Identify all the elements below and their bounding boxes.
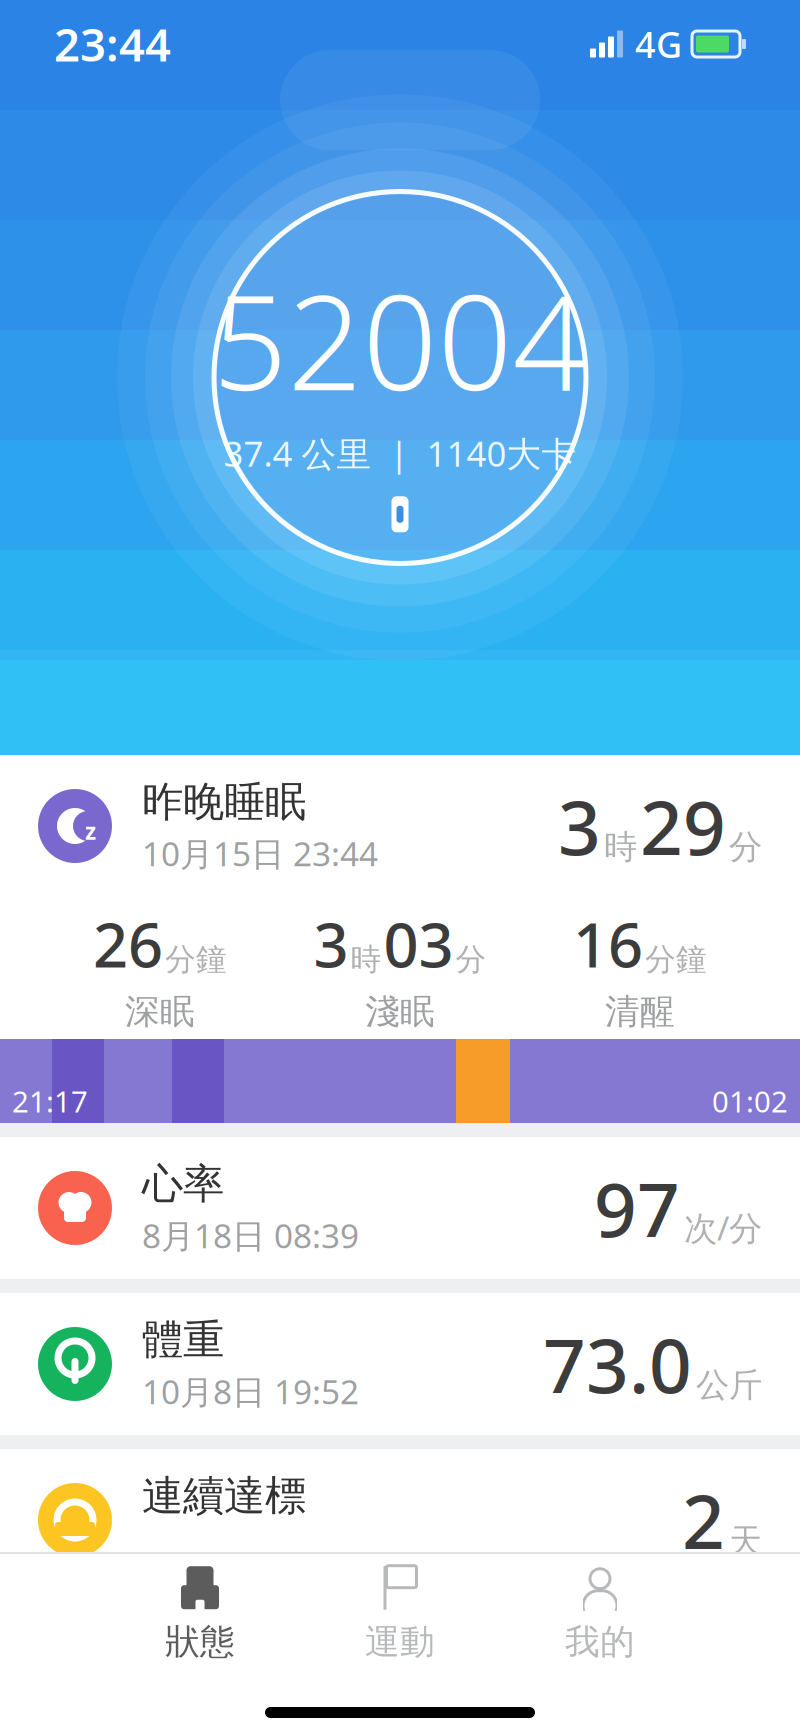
staticText: 23:44 bbox=[54, 14, 171, 74]
staticText: 21:17 bbox=[12, 1081, 88, 1120]
staticText: 10月15日 23:44 bbox=[142, 831, 378, 876]
staticText: 連續達標 bbox=[142, 1470, 306, 1521]
staticText: 26 bbox=[93, 903, 163, 984]
staticText: 公斤 bbox=[696, 1365, 762, 1405]
staticText: 次/分 bbox=[684, 1205, 762, 1250]
staticText: 分鐘 bbox=[645, 941, 707, 978]
staticText: 昨晚睡眠 bbox=[142, 776, 306, 827]
staticText: 淺眠 bbox=[365, 990, 435, 1033]
staticText: z bbox=[85, 816, 96, 846]
staticText: 10月8日 19:52 bbox=[142, 1369, 359, 1414]
staticText: 52004 bbox=[212, 253, 587, 426]
staticText: 分鐘 bbox=[165, 941, 227, 978]
staticText: 3 bbox=[313, 903, 348, 984]
staticText: 深眠 bbox=[125, 990, 195, 1033]
staticText: 清醒 bbox=[605, 990, 675, 1033]
staticText: 73.0 bbox=[543, 1314, 692, 1414]
button[interactable]: z bbox=[0, 755, 800, 897]
staticText: 4G bbox=[635, 20, 682, 68]
staticText: 29 bbox=[640, 776, 726, 876]
button[interactable]: 心率 bbox=[0, 1137, 800, 1279]
staticText: 心率 bbox=[142, 1158, 224, 1209]
button[interactable]: 運動 bbox=[300, 1554, 500, 1674]
button[interactable]: 體重 bbox=[0, 1293, 800, 1435]
staticText: 8月18日 08:39 bbox=[142, 1213, 359, 1258]
staticText: 03 bbox=[383, 903, 453, 984]
button[interactable]: 狀態 bbox=[100, 1554, 300, 1674]
button[interactable]: 連續達標 bbox=[0, 1449, 800, 1591]
staticText: 時 bbox=[604, 827, 637, 867]
staticText: 3 bbox=[558, 776, 601, 876]
staticText: 體重 bbox=[142, 1314, 224, 1365]
staticText: 分 bbox=[455, 941, 486, 978]
button[interactable]: 我的 bbox=[500, 1554, 700, 1674]
staticText: 運動 bbox=[365, 1621, 435, 1663]
staticText: 天 bbox=[729, 1521, 762, 1561]
staticText: 16 bbox=[573, 903, 643, 984]
staticText: 97 bbox=[594, 1158, 680, 1258]
staticText: 37.4 公里 | 1140大卡 bbox=[223, 430, 576, 476]
staticText: 時 bbox=[350, 941, 381, 978]
staticText: 分 bbox=[729, 827, 762, 867]
staticText: 2 bbox=[682, 1470, 725, 1570]
staticText: 我的 bbox=[565, 1621, 635, 1663]
staticText: 01:02 bbox=[712, 1081, 788, 1120]
staticText: 狀態 bbox=[165, 1621, 235, 1663]
